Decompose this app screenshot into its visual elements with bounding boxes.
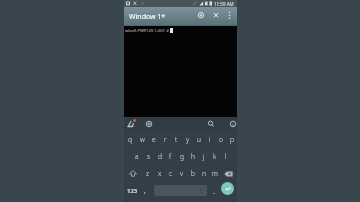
button[interactable]: h — [187, 148, 198, 165]
staticText: n — [202, 169, 206, 178]
staticText: w — [140, 135, 145, 144]
button[interactable] — [124, 117, 237, 131]
staticText: o — [219, 135, 223, 144]
button[interactable] — [221, 182, 234, 195]
staticText: v — [180, 169, 184, 178]
staticText: p — [230, 135, 234, 144]
button[interactable]: j — [198, 148, 209, 165]
staticText: c — [169, 169, 173, 178]
button[interactable]: u — [193, 131, 204, 148]
staticText: e — [152, 135, 156, 144]
button[interactable]: t — [171, 131, 182, 148]
button[interactable]: b — [187, 165, 198, 182]
staticText: d — [158, 152, 162, 161]
button[interactable]: c — [165, 165, 176, 182]
button[interactable]: . — [213, 187, 215, 197]
staticText: y — [186, 135, 190, 144]
button[interactable]: , — [144, 186, 146, 196]
staticText: h — [191, 152, 195, 161]
staticText: z — [146, 169, 150, 178]
button[interactable]: Window 1* — [129, 12, 166, 22]
button[interactable]: k — [209, 148, 220, 165]
button[interactable]: d — [154, 148, 165, 165]
staticText: t — [175, 135, 178, 144]
button[interactable] — [124, 165, 142, 182]
button[interactable]: w — [136, 131, 148, 148]
button[interactable]: y — [182, 131, 193, 148]
button[interactable]: s — [143, 148, 154, 165]
button[interactable]: g — [176, 148, 187, 165]
button[interactable]: a — [131, 148, 143, 165]
button[interactable]: x — [154, 165, 165, 182]
button[interactable]: 123 — [127, 187, 138, 195]
staticText: j — [203, 152, 205, 161]
staticText: u — [197, 135, 201, 144]
staticText: wlan0-PWR149.1-4G1 # — [125, 28, 169, 33]
staticText: k — [213, 152, 217, 161]
button[interactable]: e — [148, 131, 160, 148]
staticText: r — [164, 135, 167, 144]
staticText: 11:59 AM — [214, 1, 234, 7]
button[interactable] — [220, 165, 237, 182]
button[interactable]: l — [220, 148, 231, 165]
button[interactable]: o — [215, 131, 226, 148]
staticText: g — [180, 152, 184, 161]
staticText: s — [147, 152, 151, 161]
button[interactable]: f — [165, 148, 176, 165]
button[interactable]: m — [209, 165, 220, 182]
button[interactable]: q — [124, 131, 136, 148]
button[interactable]: v — [176, 165, 187, 182]
staticText: a — [135, 152, 139, 161]
button[interactable]: z — [142, 165, 154, 182]
staticText: l — [225, 152, 227, 161]
staticText: q — [128, 135, 132, 144]
staticText: m — [212, 169, 218, 178]
button[interactable]: i — [204, 131, 215, 148]
staticText: b — [191, 169, 195, 178]
button[interactable]: n — [198, 165, 209, 182]
staticText: f — [169, 152, 172, 161]
staticText: i — [209, 135, 211, 144]
staticText: x — [158, 169, 162, 178]
button[interactable]: r — [160, 131, 171, 148]
button[interactable]: p — [226, 131, 237, 148]
